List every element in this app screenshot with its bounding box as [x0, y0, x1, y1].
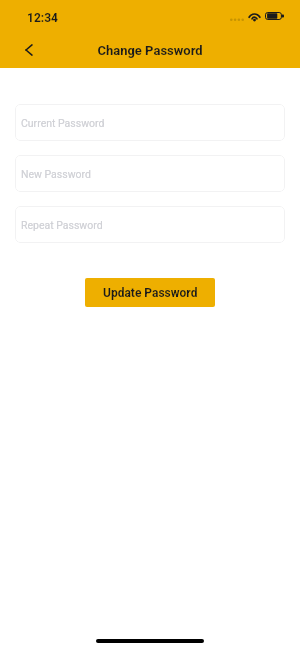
staticText: Change Password	[97, 43, 203, 58]
staticText: Current Password	[21, 117, 105, 129]
button[interactable]: Back	[11, 32, 47, 68]
staticText: Update Password	[103, 286, 198, 300]
staticText: Repeat Password	[21, 219, 103, 231]
button[interactable]: Update Password	[85, 278, 215, 307]
button[interactable]: New Password	[15, 155, 285, 192]
staticText: 12:34	[27, 11, 58, 25]
button[interactable]: Repeat Password	[15, 206, 285, 243]
button[interactable]: Current Password	[15, 104, 285, 141]
staticText: New Password	[21, 168, 91, 180]
